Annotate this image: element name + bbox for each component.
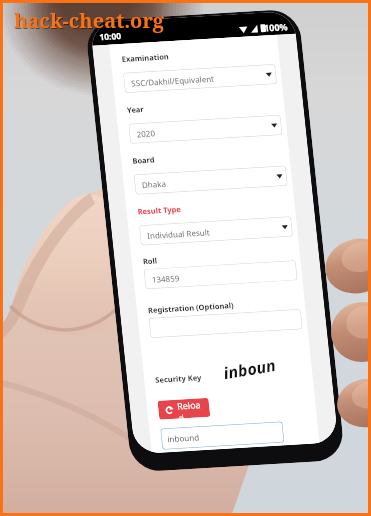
staticText: Individual Result [142, 197, 216, 270]
staticText: SSC/Dakhil/Equivalent [126, 34, 220, 127]
staticText: Result Type [133, 183, 186, 237]
staticText: Reload [168, 386, 212, 430]
button[interactable]: Individual Result [130, 145, 302, 317]
staticText: Registration (Optional) [143, 260, 239, 355]
staticText: 134859 [146, 259, 185, 298]
button[interactable]: inbound [151, 364, 294, 507]
button[interactable]: SSC/Dakhil/Equivalent [114, 0, 286, 164]
staticText: inbound [162, 416, 205, 459]
staticText: hack-cheat.org [14, 7, 165, 34]
staticText: 100% [258, 9, 294, 45]
button[interactable]: 2020 [119, 43, 291, 215]
staticText: inbound [208, 325, 296, 413]
staticText: 10:00 [93, 20, 127, 54]
button[interactable]: Reload [149, 374, 219, 444]
staticText: 2020 [131, 118, 161, 148]
staticText: Board [127, 144, 160, 176]
staticText: Examination [117, 29, 175, 87]
button[interactable]: 134859 [135, 189, 306, 361]
staticText: Dhaka [136, 166, 172, 202]
staticText: Security Key [150, 350, 207, 407]
staticText: Roll [138, 248, 163, 273]
button[interactable]: Dhaka [125, 94, 296, 266]
staticText: Year [122, 96, 149, 123]
button[interactable] [140, 238, 311, 409]
staticText: hack-cheat.org [15, 8, 166, 35]
